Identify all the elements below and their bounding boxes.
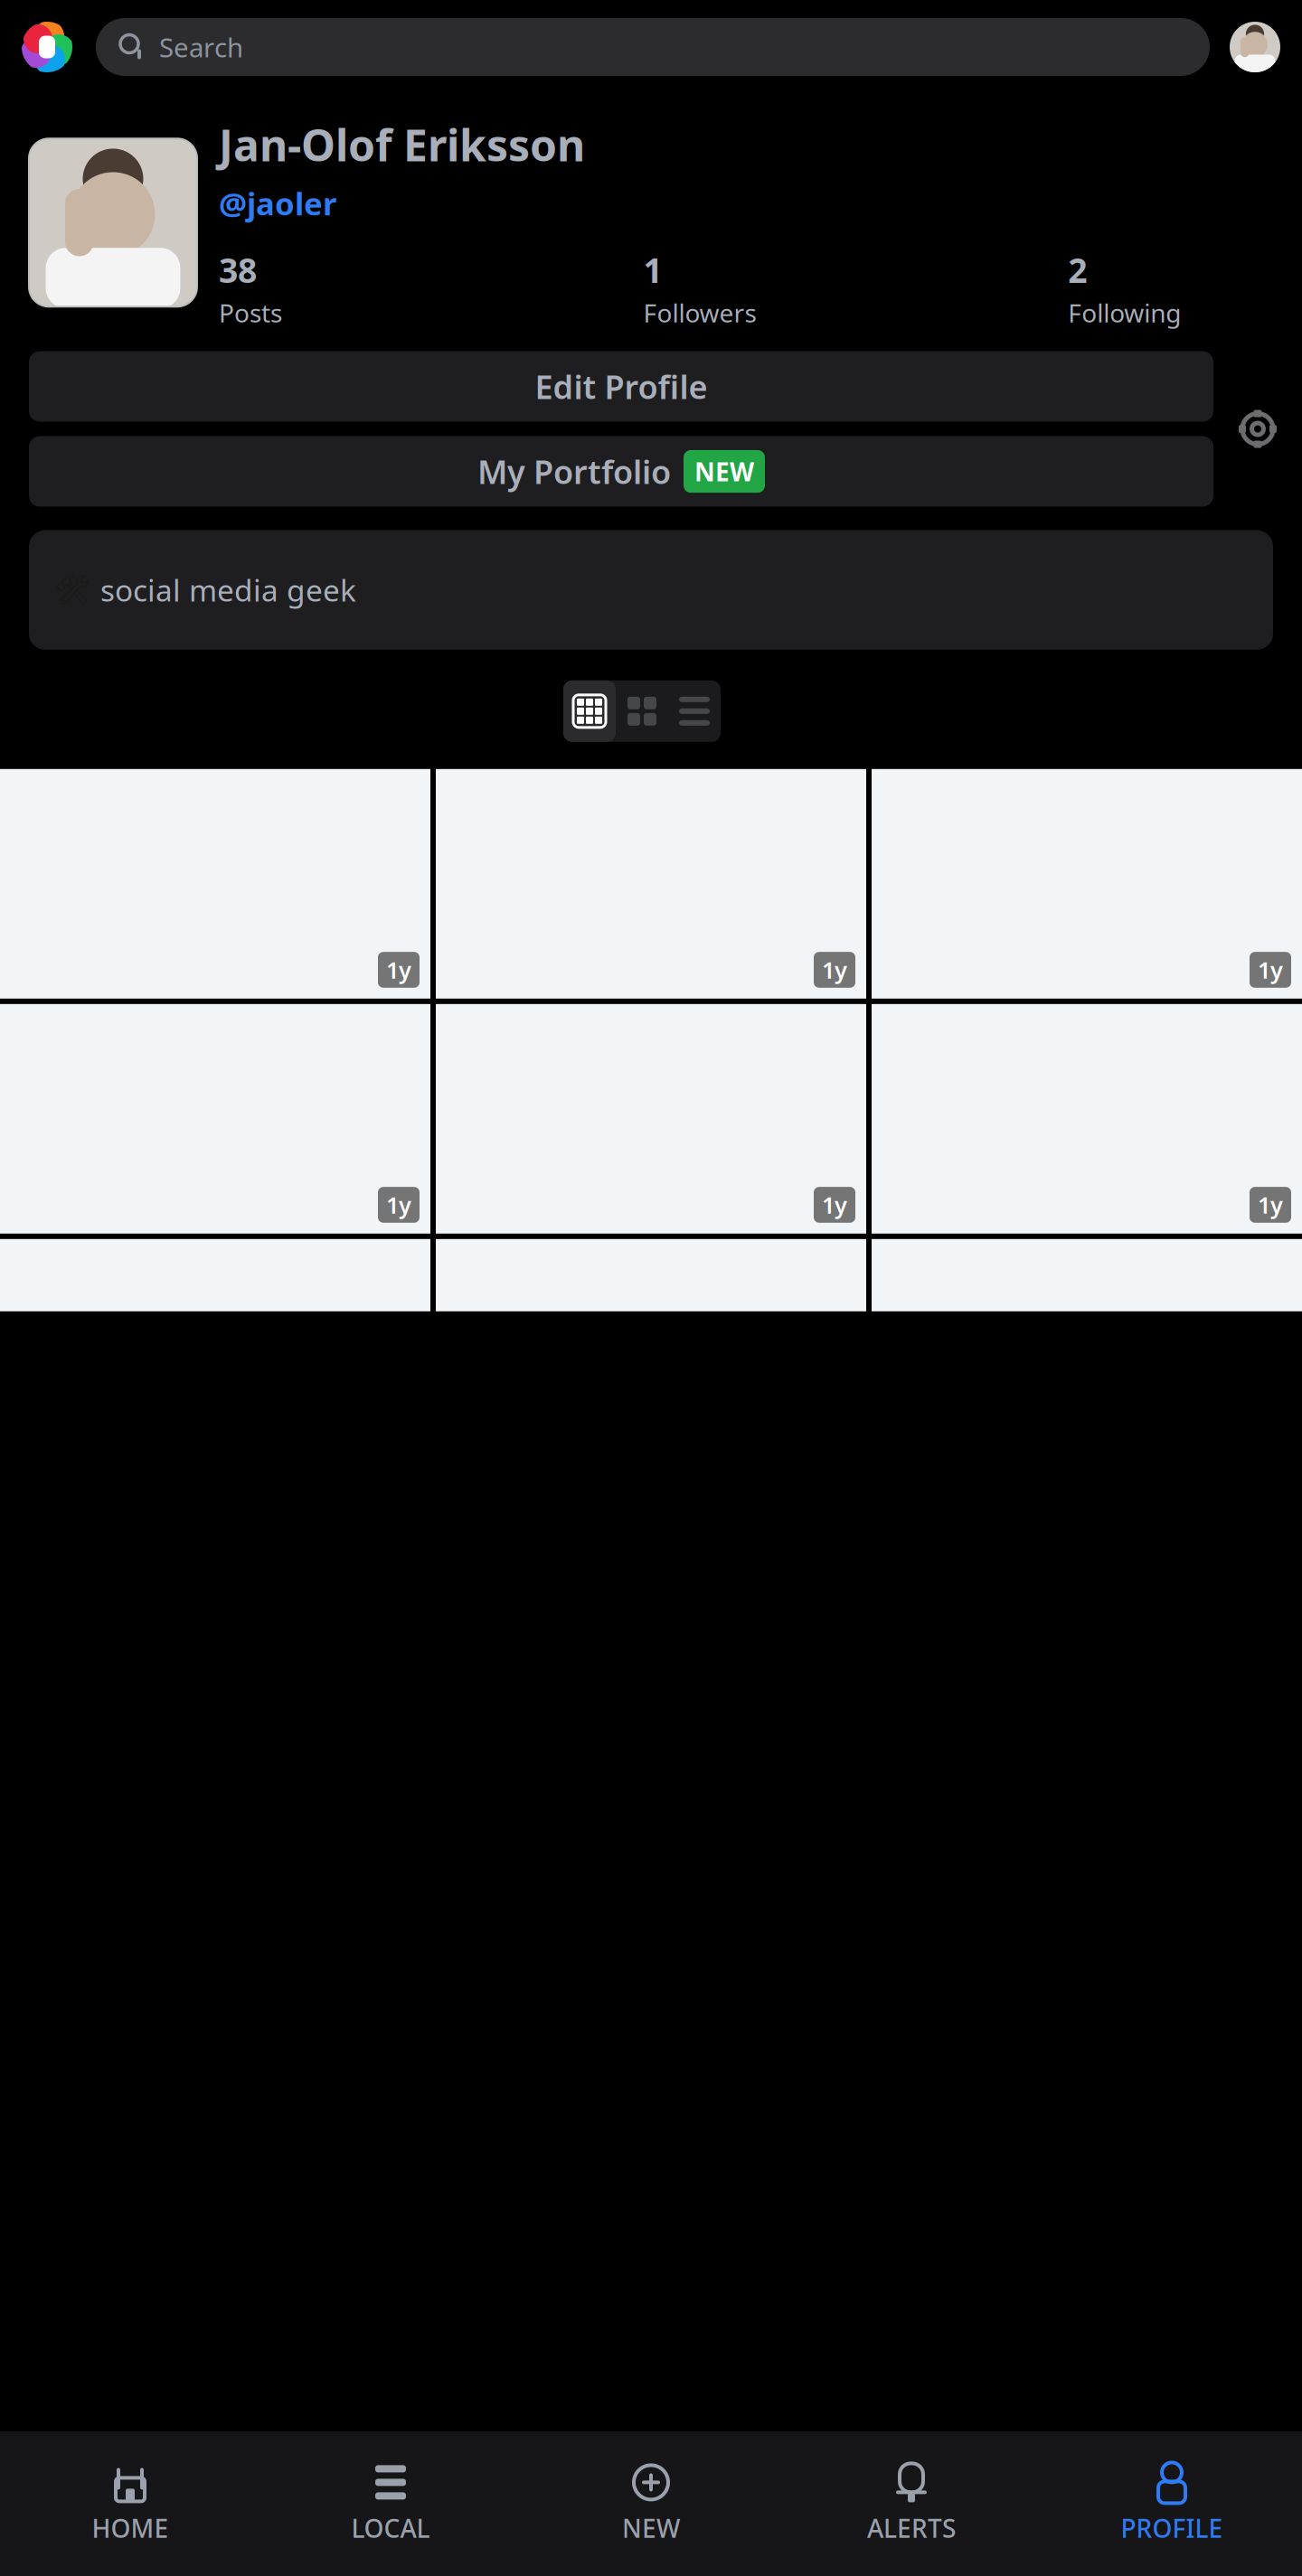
button[interactable]: My account	[1230, 22, 1280, 72]
button[interactable]: LOCAL	[260, 2446, 521, 2562]
button[interactable]: 2	[1068, 247, 1280, 330]
staticText: 2	[1068, 247, 1087, 292]
staticText: 1y	[386, 1190, 411, 1220]
button[interactable]: Photo	[0, 1239, 430, 1311]
button[interactable]: Grid layout	[563, 680, 616, 742]
button[interactable]: Photo	[872, 1004, 1302, 1234]
button[interactable]: My Portfolio	[29, 436, 1213, 507]
staticText: ALERTS	[867, 2511, 956, 2545]
button[interactable]: Settings	[1237, 408, 1278, 450]
button[interactable]: NEW	[521, 2446, 781, 2562]
staticText: Followers	[643, 296, 756, 330]
staticText: Following	[1068, 296, 1181, 330]
button[interactable]: Pixelfed home	[22, 22, 72, 72]
staticText: HOME	[92, 2511, 169, 2545]
button[interactable]: Search	[96, 18, 1210, 76]
button[interactable]: Photo	[872, 769, 1302, 999]
staticText: Search	[159, 29, 243, 65]
staticText: NEW	[694, 455, 754, 488]
staticText: Jan-Olof Eriksson	[219, 116, 585, 173]
button[interactable]: PROFILE	[1042, 2446, 1302, 2562]
button[interactable]: 1	[643, 247, 856, 330]
button[interactable]: Large grid layout	[616, 680, 668, 742]
button[interactable]: @jaoler	[219, 182, 336, 224]
button[interactable]: 38	[219, 247, 431, 330]
staticText: 38	[219, 247, 257, 292]
staticText: 1	[643, 247, 662, 292]
staticText: @jaoler	[219, 182, 336, 224]
button[interactable]: Photo	[436, 769, 866, 999]
staticText: My Portfolio	[477, 450, 671, 493]
button[interactable]: Photo	[436, 1239, 866, 1311]
button[interactable]: ALERTS	[781, 2446, 1042, 2562]
staticText: Posts	[219, 296, 282, 330]
button[interactable]: HOME	[0, 2446, 260, 2562]
staticText: 1y	[386, 955, 411, 985]
staticText: LOCAL	[351, 2511, 430, 2545]
staticText: 1y	[1258, 955, 1283, 985]
staticText: 🛠	[54, 573, 91, 606]
staticText: 1y	[1258, 1190, 1283, 1220]
button[interactable]: List layout	[668, 680, 721, 742]
staticText: PROFILE	[1121, 2511, 1223, 2545]
staticText: 1y	[822, 1190, 847, 1220]
button[interactable]: Edit Profile	[29, 351, 1213, 422]
button[interactable]: Photo	[872, 1239, 1302, 1311]
button[interactable]: Photo	[436, 1004, 866, 1234]
staticText: NEW	[622, 2511, 680, 2545]
staticText: social media geek	[100, 570, 356, 610]
button[interactable]: Photo	[0, 769, 430, 999]
staticText: 1y	[822, 955, 847, 985]
button[interactable]: Photo	[0, 1004, 430, 1234]
staticText: Edit Profile	[535, 365, 708, 408]
